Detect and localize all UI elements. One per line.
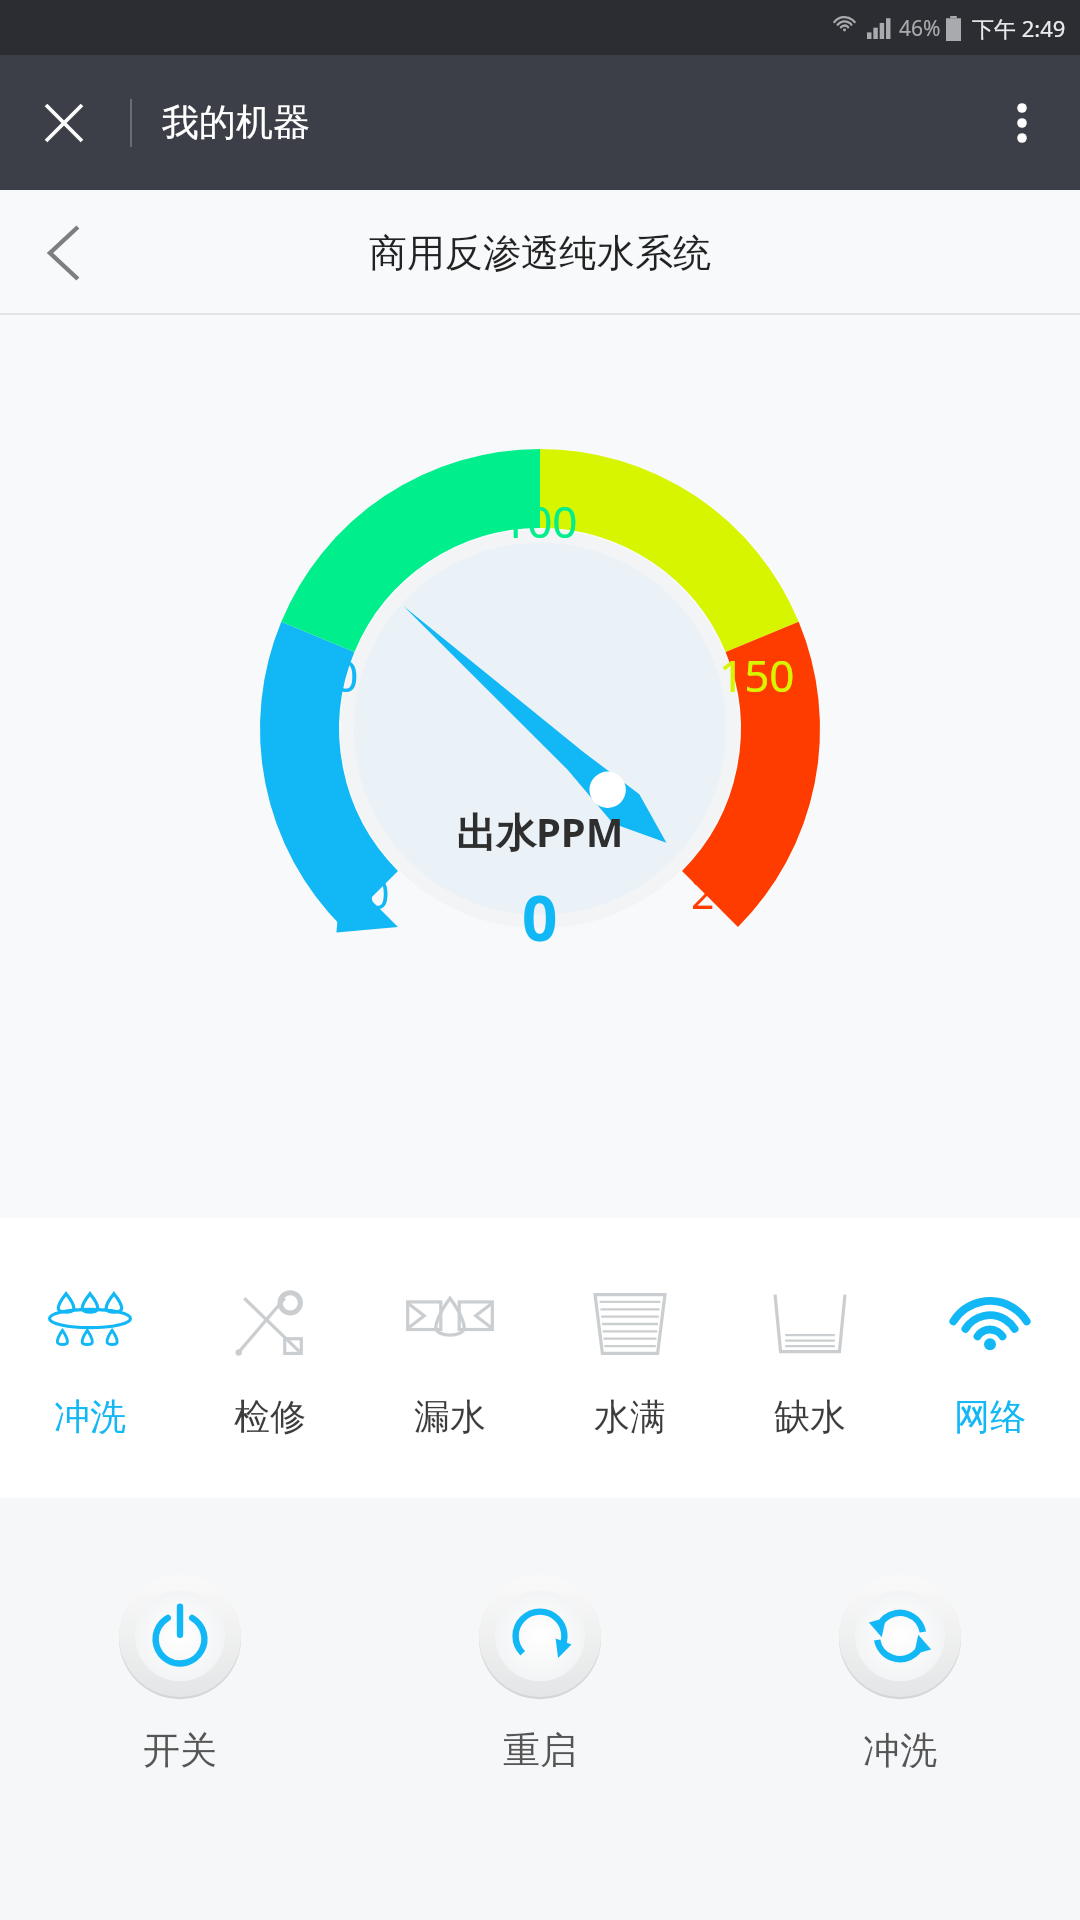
button[interactable]: 漏水: [360, 1218, 540, 1498]
button[interactable]: 网络: [900, 1218, 1080, 1498]
staticText: 46%: [899, 14, 941, 43]
staticText: 缺水: [774, 1394, 846, 1439]
staticText: 网络: [954, 1394, 1026, 1439]
staticText: 漏水: [414, 1394, 486, 1439]
button[interactable]: Back: [14, 208, 104, 298]
staticText: 冲洗: [863, 1727, 937, 1774]
staticText: 200: [691, 865, 762, 921]
staticText: 0: [366, 865, 390, 921]
staticText: 冲洗: [54, 1394, 126, 1439]
staticText: 0: [522, 875, 558, 959]
button[interactable]: 冲洗: [720, 1509, 1080, 1839]
staticText: 100: [502, 491, 578, 551]
button[interactable]: Close: [24, 83, 104, 163]
staticText: 检修: [234, 1394, 306, 1439]
button[interactable]: 检修: [180, 1218, 360, 1498]
button[interactable]: More options: [984, 85, 1060, 161]
button[interactable]: 水满: [540, 1218, 720, 1498]
staticText: 下午 2:49: [972, 13, 1066, 43]
button[interactable]: 重启: [360, 1509, 720, 1839]
button[interactable]: 冲洗: [0, 1218, 180, 1498]
staticText: 水满: [594, 1394, 666, 1439]
staticText: 出水PPM: [456, 804, 624, 859]
staticText: 商用反渗透纯水系统: [369, 229, 711, 277]
staticText: 我的机器: [162, 99, 310, 146]
button[interactable]: 缺水: [720, 1218, 900, 1498]
button[interactable]: 开关: [0, 1509, 360, 1839]
staticText: 开关: [143, 1727, 217, 1774]
staticText: 50: [308, 645, 359, 705]
staticText: 150: [719, 645, 795, 705]
staticText: 重启: [503, 1727, 577, 1774]
